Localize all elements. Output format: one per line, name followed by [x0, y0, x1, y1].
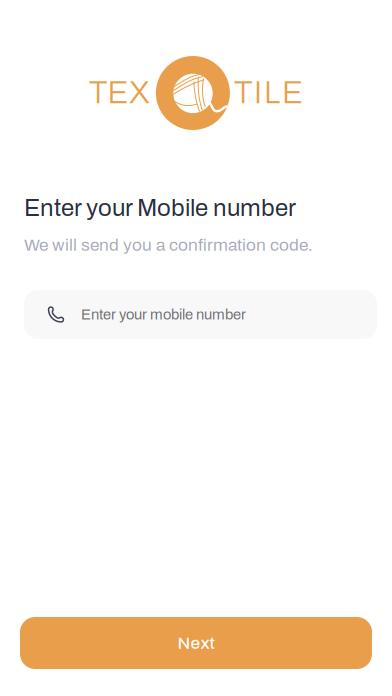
staticText: We will send you a confirmation code.: [24, 236, 313, 254]
staticText: Next: [177, 634, 214, 652]
staticText: Enter your Mobile number: [24, 195, 296, 221]
staticText: TILE: [234, 76, 303, 110]
button[interactable]: Next: [20, 617, 372, 669]
staticText: Enter your mobile number: [81, 306, 246, 322]
staticText: TEX: [89, 76, 150, 110]
